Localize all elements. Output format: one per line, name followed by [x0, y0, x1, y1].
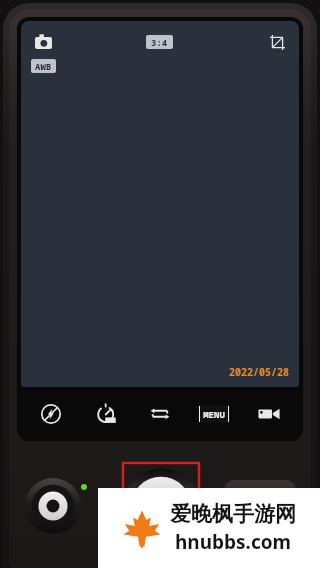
button[interactable]: Mode dial	[25, 478, 81, 534]
staticText: AWB	[35, 60, 52, 72]
button[interactable]: AWB	[31, 59, 56, 73]
staticText: 爱晚枫手游网	[170, 501, 296, 527]
staticText: MENU	[203, 408, 225, 420]
staticText: hnubbs.com	[175, 529, 292, 555]
button[interactable]: Video mode	[249, 394, 289, 434]
button[interactable]: MENU	[194, 397, 234, 431]
button[interactable]: Flash off	[31, 394, 71, 434]
button[interactable]: 3:4	[146, 35, 173, 49]
button[interactable]: Self timer off	[86, 394, 126, 434]
staticText: 2022/05/28	[229, 365, 289, 379]
button[interactable]: Aspect / crop	[265, 30, 289, 54]
button[interactable]: Shutter	[123, 463, 199, 511]
button[interactable]: Switch camera	[140, 394, 180, 434]
staticText: 3:4	[151, 36, 168, 48]
button[interactable]: Photo mode	[31, 30, 55, 54]
